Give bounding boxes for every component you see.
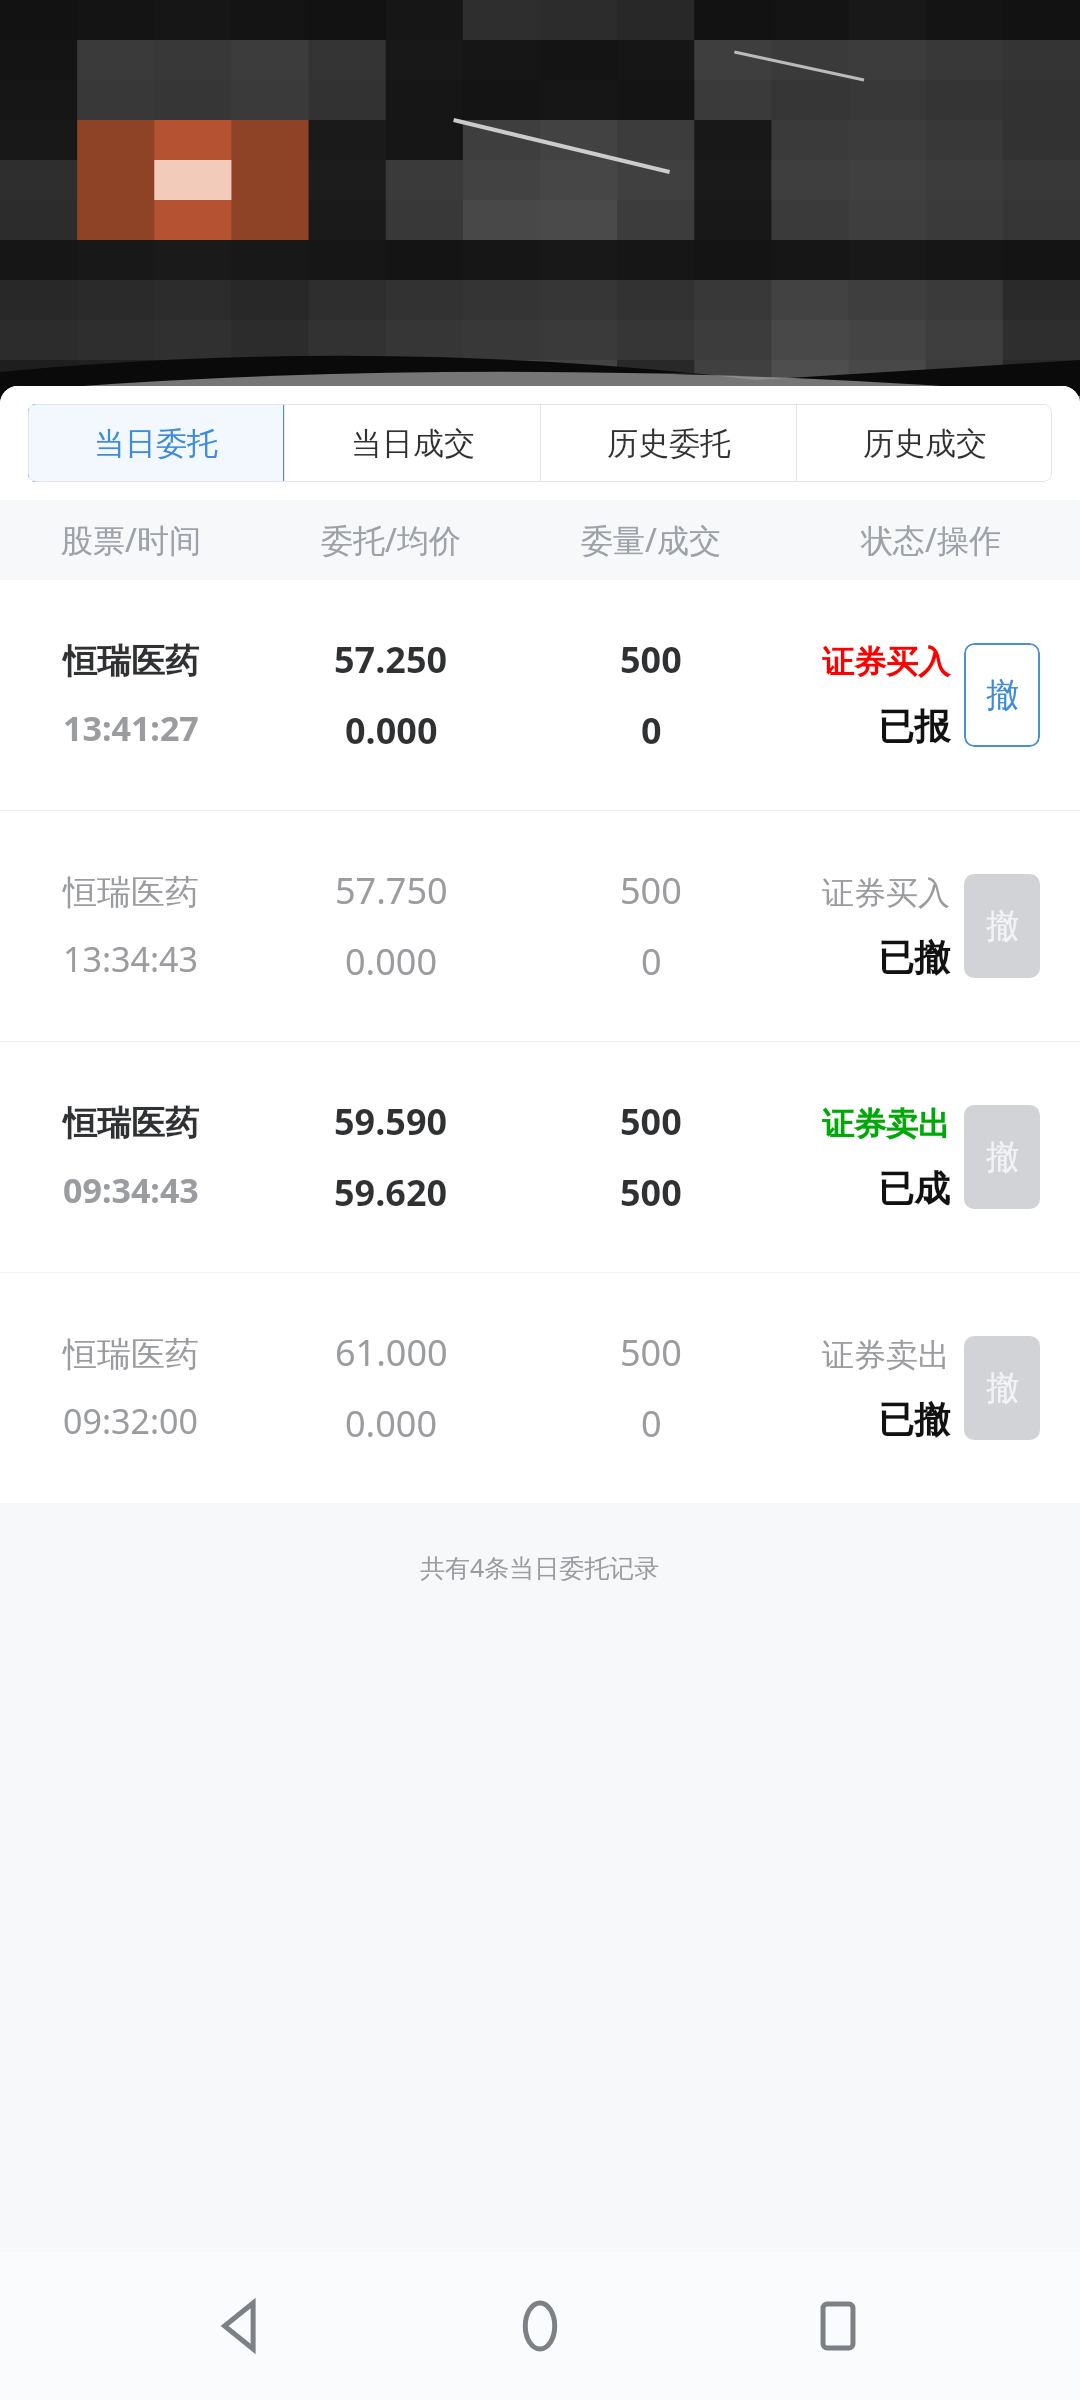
- staticText: 0: [641, 706, 662, 755]
- staticText: 500: [620, 1097, 682, 1146]
- staticText: 已成: [878, 1166, 950, 1211]
- staticText: 500: [620, 1168, 682, 1217]
- button[interactable]: 恒瑞医药: [0, 1273, 1080, 1503]
- staticText: 历史成交: [863, 424, 987, 463]
- staticText: 59.590: [334, 1097, 448, 1146]
- button[interactable]: 当日委托: [28, 404, 284, 482]
- button[interactable]: 撤单: [964, 1336, 1040, 1440]
- button[interactable]: 恒瑞医药: [0, 811, 1080, 1041]
- staticText: 共有4条当日委托记录: [420, 1550, 660, 1584]
- staticText: 证券买入: [822, 642, 950, 682]
- staticText: 恒瑞医药: [63, 1102, 199, 1145]
- staticText: 委量/成交: [581, 518, 721, 562]
- button[interactable]: 恒瑞医药: [0, 580, 1080, 810]
- staticText: 0.000: [345, 1399, 438, 1448]
- staticText: 已撤: [878, 935, 950, 980]
- staticText: 500: [620, 1328, 682, 1377]
- staticText: 0.000: [345, 706, 438, 755]
- button[interactable]: 当日成交: [285, 404, 540, 482]
- staticText: 57.750: [335, 866, 448, 915]
- staticText: 撤: [986, 1136, 1019, 1178]
- button[interactable]: 历史成交: [797, 404, 1052, 482]
- staticText: 历史委托: [607, 424, 731, 463]
- staticText: 股票/时间: [61, 518, 201, 562]
- button[interactable]: Home: [485, 2271, 595, 2381]
- staticText: 当日委托: [94, 424, 218, 463]
- staticText: 500: [620, 866, 682, 915]
- button[interactable]: 撤单: [964, 643, 1040, 747]
- staticText: 0: [641, 1399, 662, 1448]
- staticText: 撤: [986, 674, 1019, 716]
- button[interactable]: Back: [188, 2271, 298, 2381]
- staticText: 09:32:00: [63, 1398, 198, 1444]
- staticText: 已报: [878, 704, 950, 749]
- staticText: 撤: [986, 905, 1019, 947]
- staticText: 恒瑞医药: [63, 871, 199, 914]
- button[interactable]: 历史委托: [541, 404, 796, 482]
- staticText: 当日成交: [351, 424, 475, 463]
- staticText: 500: [620, 635, 682, 684]
- staticText: 状态/操作: [861, 518, 1001, 562]
- staticText: 证券卖出: [822, 1104, 950, 1144]
- staticText: 61.000: [335, 1328, 448, 1377]
- staticText: 证券买入: [822, 873, 950, 913]
- staticText: 撤: [986, 1367, 1019, 1409]
- button[interactable]: 恒瑞医药: [0, 1042, 1080, 1272]
- staticText: 证券卖出: [822, 1335, 950, 1375]
- staticText: 已撤: [878, 1397, 950, 1442]
- button[interactable]: Recents: [783, 2271, 893, 2381]
- staticText: 恒瑞医药: [63, 1333, 199, 1376]
- staticText: 0.000: [345, 937, 438, 986]
- staticText: 13:34:43: [63, 936, 198, 982]
- staticText: 59.620: [334, 1168, 448, 1217]
- button[interactable]: 撤单: [964, 874, 1040, 978]
- staticText: 恒瑞医药: [63, 640, 199, 683]
- staticText: 0: [641, 937, 662, 986]
- staticText: 13:41:27: [63, 705, 199, 751]
- button[interactable]: 撤单: [964, 1105, 1040, 1209]
- staticText: 委托/均价: [321, 518, 461, 562]
- staticText: 09:34:43: [63, 1167, 199, 1213]
- staticText: 57.250: [334, 635, 448, 684]
